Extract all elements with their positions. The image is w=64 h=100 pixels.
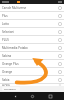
staticText: Canale Multiverse [2,6,58,10]
button[interactable]: Lotto [0,20,64,27]
button[interactable]: Sabia [0,76,64,83]
staticText: CONFERMA [4,88,16,91]
button[interactable]: Canale Multiverse [0,4,64,11]
button[interactable]: Back [12,93,18,99]
button[interactable]: CONFERMA [2,87,20,91]
staticText: Sabia [2,78,58,82]
staticText: Multimedia Potabo [2,46,58,50]
button[interactable]: Orange [0,68,64,75]
button[interactable]: HOVA [0,84,64,86]
staticText: Selezioni [2,30,58,34]
staticText: HOVA [2,84,58,86]
staticText: PLUS [2,38,58,42]
button[interactable]: Home [29,93,35,99]
button[interactable]: Plus [0,12,64,19]
button[interactable]: PLUS [0,36,64,43]
button[interactable]: Recents [47,93,53,99]
button[interactable]: Selezioni [0,28,64,35]
staticText: Sabina [2,54,58,58]
button[interactable]: Multimedia Potabo [0,44,64,51]
staticText: Orange Plus [2,62,58,66]
staticText: Orange [2,70,58,74]
button[interactable]: Orange Plus [0,60,64,67]
button[interactable]: Sabina [0,52,64,59]
staticText: Lotto [2,22,58,26]
staticText: Plus [2,14,58,18]
